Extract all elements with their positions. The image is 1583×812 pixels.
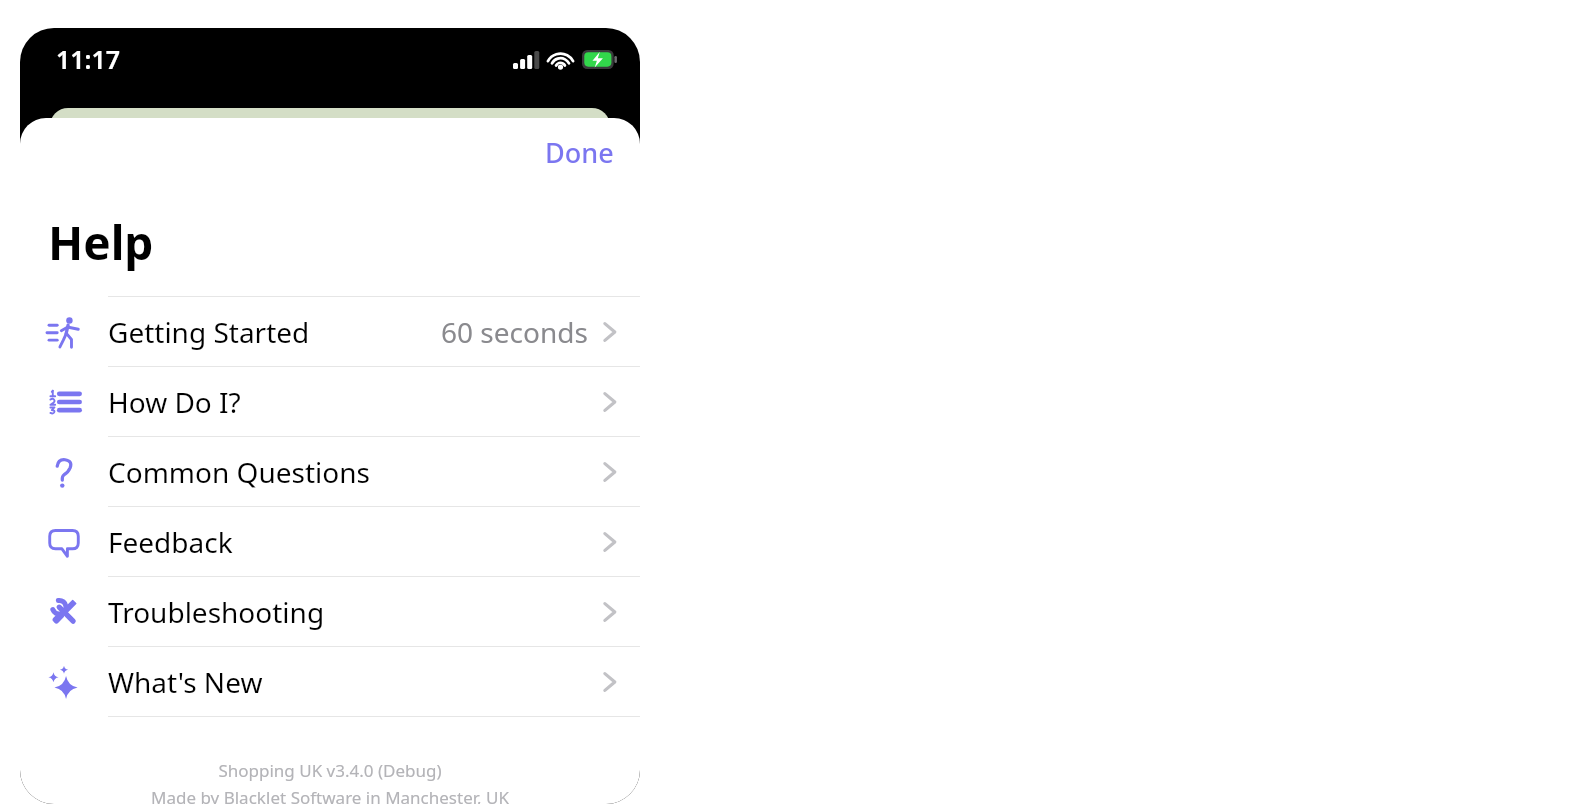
staticText: Done [545,134,614,171]
staticText: Troubleshooting [108,593,325,631]
staticText: 60 seconds [441,313,588,351]
staticText: Made by BlackJet Software in Manchester,… [151,786,509,804]
other: How Do I? [47,385,81,419]
staticText: Shopping UK v3.4.0 (Debug) [218,759,442,782]
button[interactable]: What's New [20,646,640,716]
other: What's New [47,665,81,699]
staticText: Feedback [108,523,233,561]
staticText: What's New [108,663,263,701]
other: Common Questions [47,455,81,489]
staticText: Getting Started [108,313,310,351]
staticText: Help [48,211,154,274]
button[interactable]: Common Questions [20,436,640,506]
other: Feedback [47,525,81,559]
button[interactable]: Troubleshooting [20,576,640,646]
button[interactable]: Done [519,118,640,187]
other: Troubleshooting [47,595,81,629]
button[interactable]: How Do I? [20,366,640,436]
staticText: 11:17 [56,42,121,76]
other: Getting Started [47,315,81,349]
button[interactable]: Getting Started [20,296,640,366]
button[interactable]: Feedback [20,506,640,576]
staticText: How Do I? [108,383,241,421]
staticText: Common Questions [108,453,370,491]
